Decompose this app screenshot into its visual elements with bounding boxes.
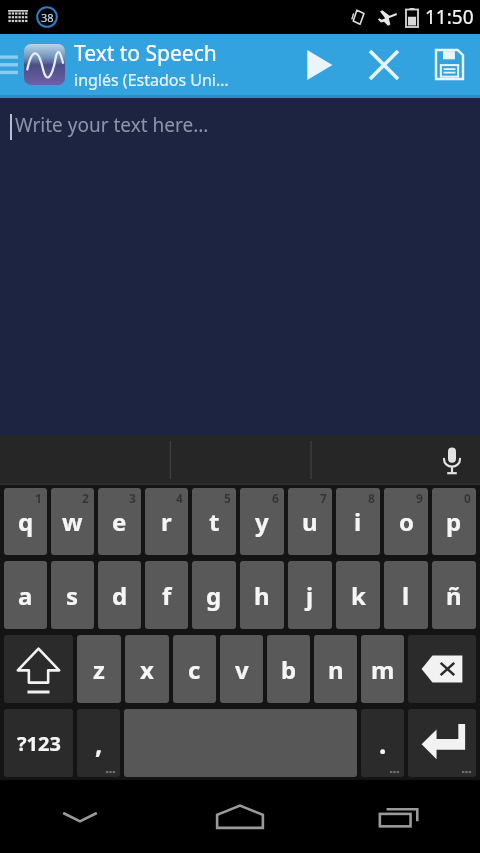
staticText: g bbox=[206, 579, 222, 612]
button[interactable]: p bbox=[432, 488, 476, 555]
button[interactable]: k bbox=[336, 561, 380, 629]
staticText: 11:50 bbox=[425, 4, 474, 30]
button[interactable]: Write your text here... bbox=[0, 98, 480, 435]
button[interactable]: Save bbox=[418, 34, 480, 95]
button[interactable]: i bbox=[336, 488, 380, 555]
button[interactable]: x bbox=[125, 635, 169, 703]
staticText: Write your text here... bbox=[15, 112, 209, 138]
staticText: y bbox=[255, 505, 269, 538]
staticText: 5 bbox=[224, 490, 231, 506]
staticText: 2 bbox=[82, 490, 89, 506]
button[interactable]: , bbox=[77, 709, 120, 777]
button[interactable]: q bbox=[4, 488, 47, 555]
button[interactable]: h bbox=[240, 561, 284, 629]
button[interactable]: e bbox=[98, 488, 141, 555]
staticText: Text to Speech bbox=[74, 39, 217, 68]
staticText: m bbox=[371, 653, 395, 686]
staticText: 38 bbox=[41, 10, 54, 25]
button[interactable]: j bbox=[288, 561, 332, 629]
staticText: a bbox=[18, 579, 33, 612]
button[interactable]: c bbox=[173, 635, 216, 703]
staticText: s bbox=[66, 579, 79, 612]
staticText: 1 bbox=[35, 490, 42, 506]
button[interactable]: z bbox=[77, 635, 121, 703]
button[interactable]: l bbox=[384, 561, 428, 629]
staticText: ?123 bbox=[17, 730, 61, 757]
staticText: h bbox=[254, 579, 270, 612]
staticText: q bbox=[18, 505, 34, 538]
button[interactable]: Stop bbox=[350, 34, 418, 95]
staticText: 7 bbox=[320, 490, 327, 506]
staticText: n bbox=[328, 653, 344, 686]
staticText: e bbox=[112, 505, 127, 538]
staticText: j bbox=[306, 579, 314, 612]
button[interactable]: f bbox=[145, 561, 188, 629]
button[interactable]: Hide keyboard bbox=[0, 780, 160, 853]
staticText: ñ bbox=[446, 579, 462, 612]
staticText: inglés (Estados Uni… bbox=[74, 69, 229, 91]
staticText: v bbox=[235, 653, 249, 686]
button[interactable]: b bbox=[267, 635, 310, 703]
button[interactable]: y bbox=[240, 488, 284, 555]
button[interactable]: Home bbox=[160, 780, 320, 853]
button[interactable]: . bbox=[361, 709, 404, 777]
button[interactable]: ñ bbox=[432, 561, 476, 629]
staticText: f bbox=[162, 579, 172, 612]
button[interactable]: n bbox=[314, 635, 357, 703]
staticText: l bbox=[402, 579, 410, 612]
button[interactable]: t bbox=[192, 488, 236, 555]
staticText: 3 bbox=[129, 490, 136, 506]
button[interactable]: u bbox=[288, 488, 332, 555]
staticText: r bbox=[161, 505, 172, 538]
staticText: c bbox=[188, 653, 201, 686]
staticText: 4 bbox=[176, 490, 183, 506]
staticText: o bbox=[399, 505, 414, 538]
button[interactable]: Enter bbox=[408, 709, 476, 777]
staticText: p bbox=[446, 505, 462, 538]
button[interactable]: v bbox=[220, 635, 263, 703]
button[interactable]: r bbox=[145, 488, 188, 555]
button[interactable]: g bbox=[192, 561, 236, 629]
button[interactable]: Backspace bbox=[408, 635, 476, 703]
staticText: w bbox=[62, 505, 83, 538]
button[interactable]: Play bbox=[288, 34, 350, 95]
button[interactable]: s bbox=[51, 561, 94, 629]
staticText: d bbox=[112, 579, 128, 612]
staticText: 0 bbox=[464, 490, 471, 506]
button[interactable]: Open navigation drawer bbox=[0, 34, 22, 95]
staticText: u bbox=[302, 505, 318, 538]
staticText: . bbox=[379, 726, 387, 761]
button[interactable]: w bbox=[51, 488, 94, 555]
staticText: 6 bbox=[272, 490, 279, 506]
button[interactable]: a bbox=[4, 561, 47, 629]
button[interactable]: ?123 bbox=[4, 709, 73, 777]
staticText: t bbox=[209, 505, 220, 538]
staticText: b bbox=[281, 653, 297, 686]
button[interactable]: m bbox=[361, 635, 404, 703]
staticText: 9 bbox=[416, 490, 423, 506]
staticText: k bbox=[351, 579, 366, 612]
staticText: 8 bbox=[368, 490, 375, 506]
staticText: x bbox=[140, 653, 154, 686]
button[interactable]: Recent apps bbox=[320, 780, 480, 853]
staticText: , bbox=[95, 726, 103, 761]
button[interactable]: Shift bbox=[4, 635, 73, 703]
staticText: i bbox=[354, 505, 362, 538]
staticText: z bbox=[93, 653, 105, 686]
button[interactable]: Voice input bbox=[424, 435, 480, 485]
button[interactable]: d bbox=[98, 561, 141, 629]
button[interactable]: o bbox=[384, 488, 428, 555]
